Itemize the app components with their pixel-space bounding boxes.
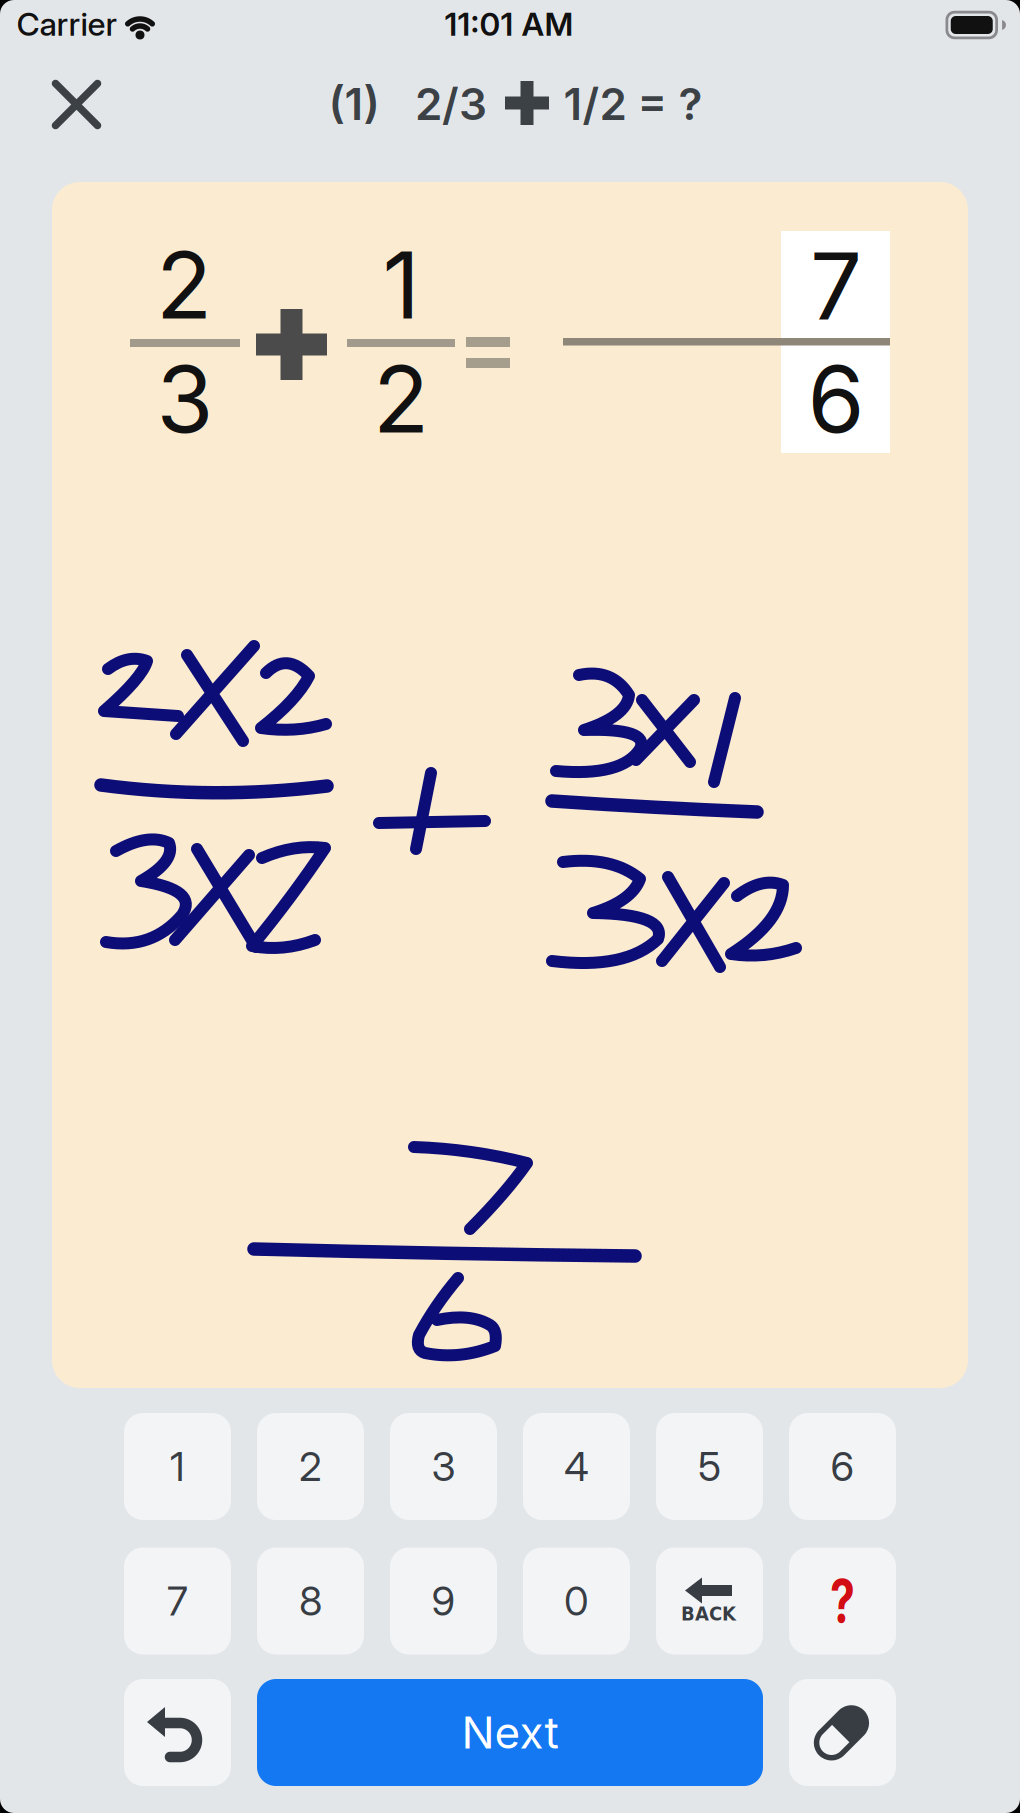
button[interactable]: Backspace bbox=[656, 1547, 763, 1654]
button[interactable]: 5 bbox=[656, 1413, 763, 1520]
button[interactable]: 0 bbox=[523, 1547, 630, 1654]
staticText: 8 bbox=[299, 1577, 322, 1625]
button[interactable]: Eraser bbox=[789, 1679, 896, 1786]
button[interactable]: 7 bbox=[124, 1547, 231, 1654]
button[interactable]: 4 bbox=[523, 1413, 630, 1520]
button[interactable]: 3 bbox=[390, 1413, 497, 1520]
button[interactable]: 8 bbox=[257, 1547, 364, 1654]
button[interactable]: Hint bbox=[789, 1547, 896, 1654]
staticText: 5 bbox=[698, 1442, 721, 1491]
staticText: 4 bbox=[564, 1442, 589, 1491]
staticText: 2 bbox=[299, 1442, 322, 1491]
button[interactable]: Undo bbox=[124, 1679, 231, 1786]
staticText: (1) bbox=[328, 77, 379, 131]
staticText: 1 bbox=[382, 229, 419, 341]
staticText: 3 bbox=[156, 343, 213, 455]
button[interactable]: Close bbox=[41, 69, 111, 139]
button[interactable]: Next bbox=[257, 1679, 763, 1786]
staticText: BACK bbox=[681, 1602, 736, 1625]
button[interactable]: 9 bbox=[390, 1547, 497, 1654]
staticText: 6 bbox=[830, 1442, 854, 1491]
button[interactable]: 1 bbox=[124, 1413, 231, 1520]
staticText: Next bbox=[461, 1706, 558, 1759]
staticText: 7 bbox=[167, 1577, 188, 1625]
button[interactable]: 2 bbox=[257, 1413, 364, 1520]
staticText: 1/2 = ? bbox=[563, 77, 702, 131]
staticText: 7 bbox=[810, 230, 862, 342]
staticText: ? bbox=[826, 1565, 859, 1636]
staticText: 0 bbox=[564, 1577, 589, 1625]
staticText: 2 bbox=[156, 229, 212, 341]
staticText: 6 bbox=[807, 343, 864, 455]
staticText: 1 bbox=[170, 1442, 185, 1491]
staticText: 2 bbox=[373, 343, 429, 455]
staticText: 2/3 bbox=[415, 77, 487, 131]
staticText: Carrier bbox=[16, 5, 117, 43]
staticText: 9 bbox=[431, 1577, 455, 1625]
button[interactable]: 6 bbox=[789, 1413, 896, 1520]
staticText: 11:01 AM bbox=[444, 5, 573, 43]
staticText: 3 bbox=[431, 1442, 455, 1491]
